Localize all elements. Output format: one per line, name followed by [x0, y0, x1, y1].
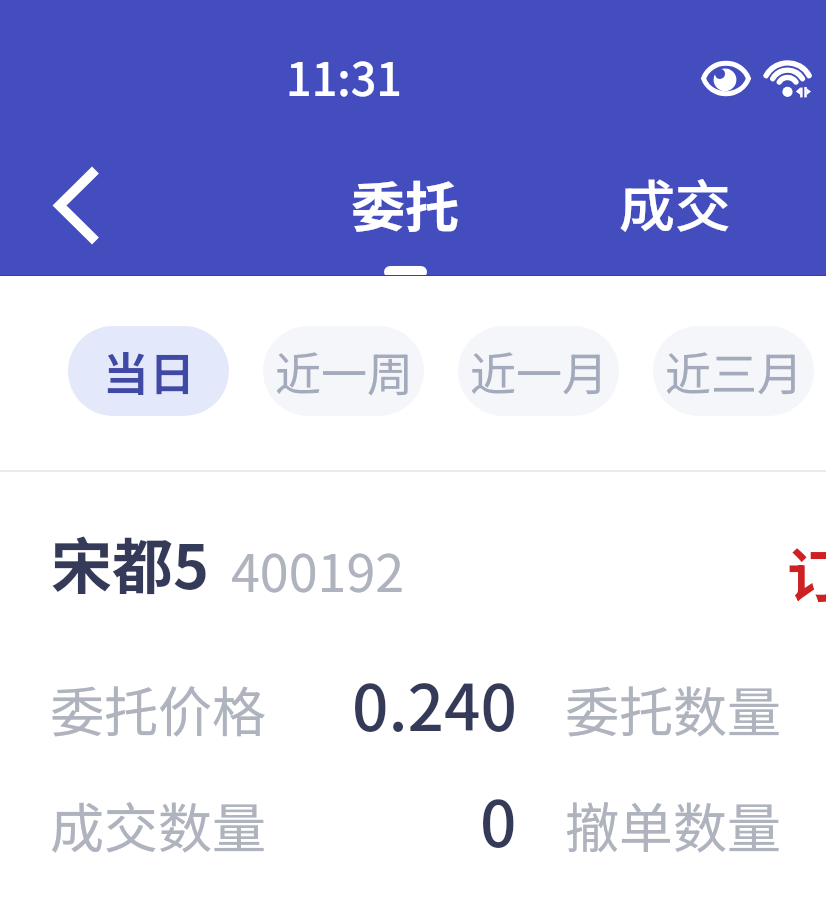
- staticText: 撤单数量: [565, 785, 781, 863]
- staticText: 委托数量: [565, 669, 781, 747]
- button[interactable]: 成交: [600, 152, 750, 252]
- staticText: 0.240: [352, 657, 517, 750]
- staticText: 400192: [231, 532, 405, 607]
- button[interactable]: 近一月: [458, 326, 619, 416]
- staticText: 11:31: [286, 44, 403, 109]
- button[interactable]: 近一周: [263, 326, 424, 416]
- button[interactable]: 宋都5: [0, 472, 826, 899]
- staticText: 订: [787, 530, 826, 614]
- staticText: 成交数量: [50, 785, 266, 863]
- staticText: 宋都5: [51, 518, 209, 606]
- staticText: 当日: [103, 338, 195, 405]
- button[interactable]: 当日: [68, 326, 229, 416]
- staticText: 近一月: [470, 338, 608, 405]
- staticText: 成交: [619, 162, 731, 243]
- button[interactable]: 委托: [330, 153, 480, 253]
- staticText: 0: [480, 773, 517, 866]
- staticText: 委托价格: [50, 669, 266, 747]
- button[interactable]: 近三月: [653, 326, 814, 416]
- button[interactable]: Back: [20, 157, 116, 253]
- staticText: 近一周: [275, 338, 413, 405]
- staticText: 委托: [351, 164, 459, 242]
- staticText: 近三月: [665, 338, 803, 405]
